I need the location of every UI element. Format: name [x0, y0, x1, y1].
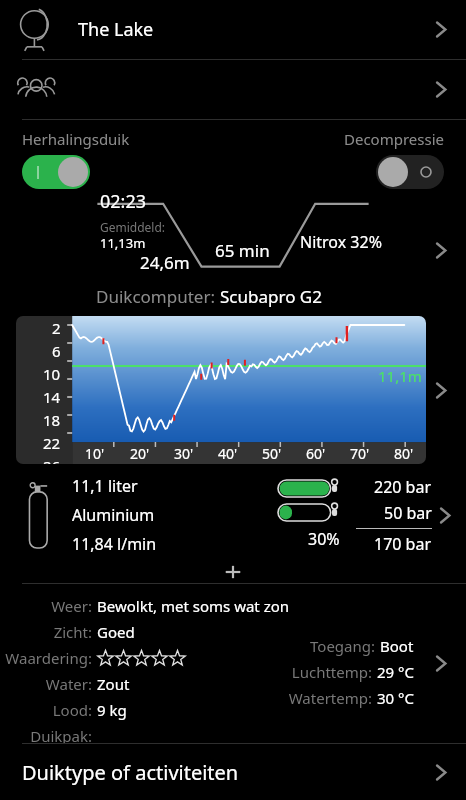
button[interactable]: 02:23: [0, 189, 466, 311]
staticText: 11,1 liter: [72, 475, 138, 497]
staticText: Weer:: [0, 596, 92, 616]
button[interactable]: Duikprofiel grafiek: [0, 311, 466, 469]
staticText: 26: [43, 456, 61, 464]
staticText: 50': [262, 444, 282, 463]
staticText: Decompressie: [344, 129, 444, 149]
staticText: 10: [43, 364, 61, 384]
button[interactable]: Herhalingsduik aan: [22, 155, 90, 189]
staticText: Bewolkt, met soms wat zon: [97, 596, 290, 616]
button[interactable]: Fles toevoegen: [220, 561, 246, 583]
staticText: Duikcomputer:: [96, 285, 220, 308]
staticText: 6: [52, 341, 61, 361]
staticText: Herhalingsduik: [22, 129, 130, 149]
staticText: 24,6m: [140, 251, 190, 274]
staticText: 02:23: [100, 189, 147, 214]
staticText: 11,13m: [100, 234, 146, 252]
staticText: Zicht:: [0, 622, 92, 642]
staticText: Duiktype of activiteiten: [22, 759, 430, 786]
staticText: 22: [43, 433, 61, 453]
staticText: Watertemp:: [284, 688, 372, 708]
staticText: Zout: [97, 674, 130, 694]
staticText: Boot: [380, 636, 414, 656]
staticText: 11,84 l/min: [72, 533, 157, 555]
staticText: Aluminium: [72, 504, 155, 526]
staticText: 50 bar: [384, 502, 432, 524]
button[interactable]: 11,1 liter: [0, 469, 466, 561]
staticText: 10': [85, 444, 105, 463]
staticText: Waardering:: [0, 648, 92, 668]
staticText: 9 kg: [97, 700, 127, 720]
staticText: 18: [43, 410, 61, 430]
staticText: Gemiddeld:: [100, 219, 166, 235]
button[interactable]: Duiktype of activiteiten: [0, 744, 466, 800]
staticText: The Lake: [78, 17, 430, 42]
staticText: Toegang:: [287, 636, 375, 656]
staticText: Lood:: [0, 700, 92, 720]
staticText: 2: [52, 318, 61, 338]
staticText: 29 °C: [377, 662, 414, 682]
staticText: Scubapro G2: [220, 285, 322, 308]
staticText: 30 °C: [377, 688, 414, 708]
staticText: 30': [174, 444, 194, 463]
button[interactable]: The Lake: [0, 0, 466, 59]
staticText: Luchttemp:: [284, 662, 372, 682]
staticText: 60': [306, 444, 326, 463]
button[interactable]: Duikmaten: [0, 60, 466, 119]
staticText: 11,1m: [378, 366, 422, 386]
staticText: 14: [43, 387, 61, 407]
staticText: 220 bar: [374, 476, 432, 498]
button[interactable]: Decompressie uit: [376, 155, 444, 189]
staticText: Goed: [97, 622, 135, 642]
staticText: Nitrox 32%: [300, 231, 382, 253]
staticText: 70': [350, 444, 370, 463]
button[interactable]: Weer:: [0, 584, 466, 743]
staticText: 20': [130, 444, 150, 463]
staticText: 40': [218, 444, 238, 463]
staticText: 30%: [308, 528, 340, 550]
staticText: Duikpak:: [0, 726, 92, 743]
staticText: 170 bar: [374, 533, 432, 555]
staticText: 65 min: [215, 239, 270, 262]
staticText: 80': [394, 444, 414, 463]
staticText: Water:: [0, 674, 92, 694]
